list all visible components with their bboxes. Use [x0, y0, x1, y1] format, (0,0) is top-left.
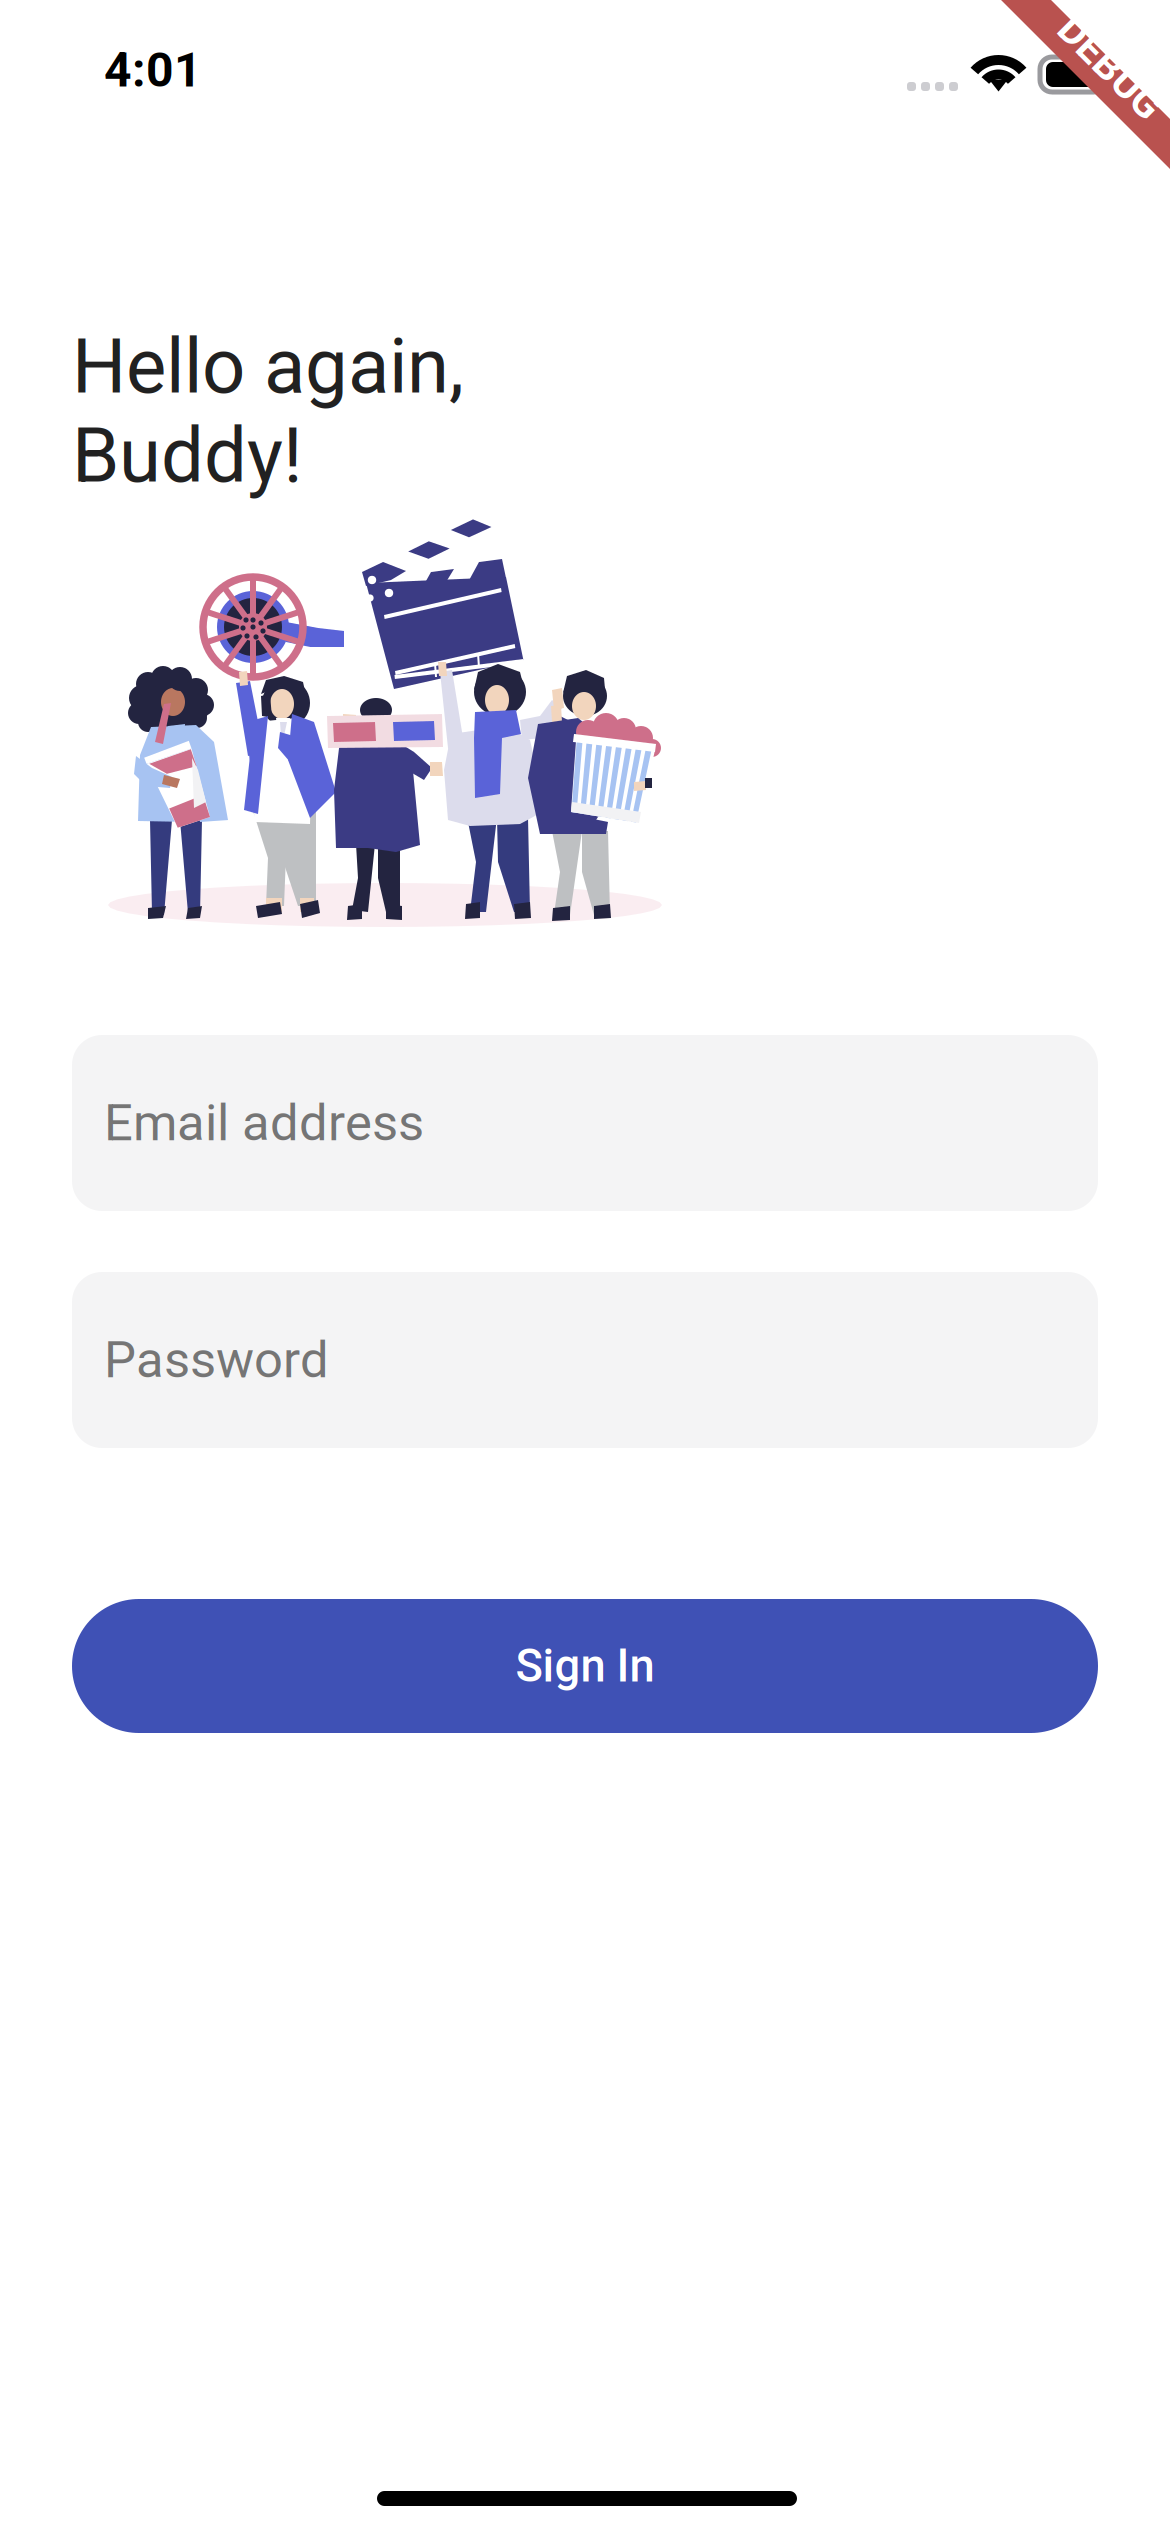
staticText: Sign In	[515, 1639, 654, 1692]
button[interactable]: Sign In	[72, 1599, 1098, 1733]
button[interactable]: Password	[72, 1272, 1098, 1448]
button[interactable]: Email address	[72, 1035, 1098, 1211]
staticText: DEBUG	[1046, 44, 1170, 91]
staticText: Hello again, Buddy!	[72, 322, 464, 500]
staticText: 4:01	[104, 42, 202, 98]
staticText: Email address	[104, 1093, 424, 1153]
staticText: Password	[104, 1330, 329, 1390]
